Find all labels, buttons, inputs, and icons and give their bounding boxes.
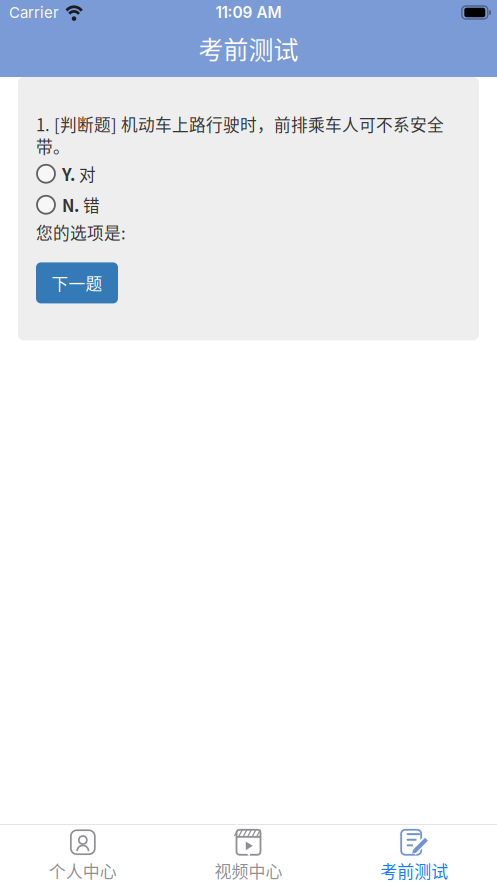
staticText: 下一题 [51, 271, 102, 295]
button[interactable]: 考前测试 [331, 825, 497, 883]
staticText: 对 [75, 162, 96, 186]
staticText: 错 [79, 193, 100, 217]
staticText: 视频中心 [214, 858, 282, 883]
button[interactable]: Y. [36, 158, 461, 189]
staticText: 11:09 AM [215, 3, 281, 22]
staticText: 考前测试 [198, 30, 298, 66]
button[interactable]: 视频中心 [166, 825, 331, 883]
staticText: 1. [判断题] 机动车上路行驶时，前排乘车人可不系安全带。 [36, 112, 444, 158]
staticText: 您的选项是: [36, 220, 126, 244]
button[interactable]: N. [36, 189, 461, 220]
button[interactable]: 下一题 [36, 262, 118, 303]
staticText: Y. [62, 162, 75, 186]
staticText: N. [62, 193, 79, 217]
staticText: 考前测试 [380, 858, 448, 883]
button[interactable]: 个人中心 [0, 825, 166, 883]
staticText: 个人中心 [49, 858, 117, 883]
staticText: Carrier [9, 3, 59, 22]
